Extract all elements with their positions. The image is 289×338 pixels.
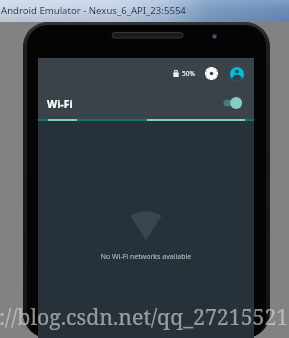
button[interactable]: Wi-Fi on/off <box>221 94 247 112</box>
button[interactable]: Account <box>228 65 246 83</box>
button[interactable]: Settings <box>202 64 220 82</box>
staticText: No Wi-Fi networks available <box>38 252 254 262</box>
staticText: Android Emulator - Nexus_6_API_23:5554 <box>1 4 186 17</box>
staticText: ://blog.csdn.net/qq_27215521 <box>0 302 288 331</box>
staticText: Wi-Fi <box>47 97 73 111</box>
staticText: 50% <box>182 69 195 78</box>
